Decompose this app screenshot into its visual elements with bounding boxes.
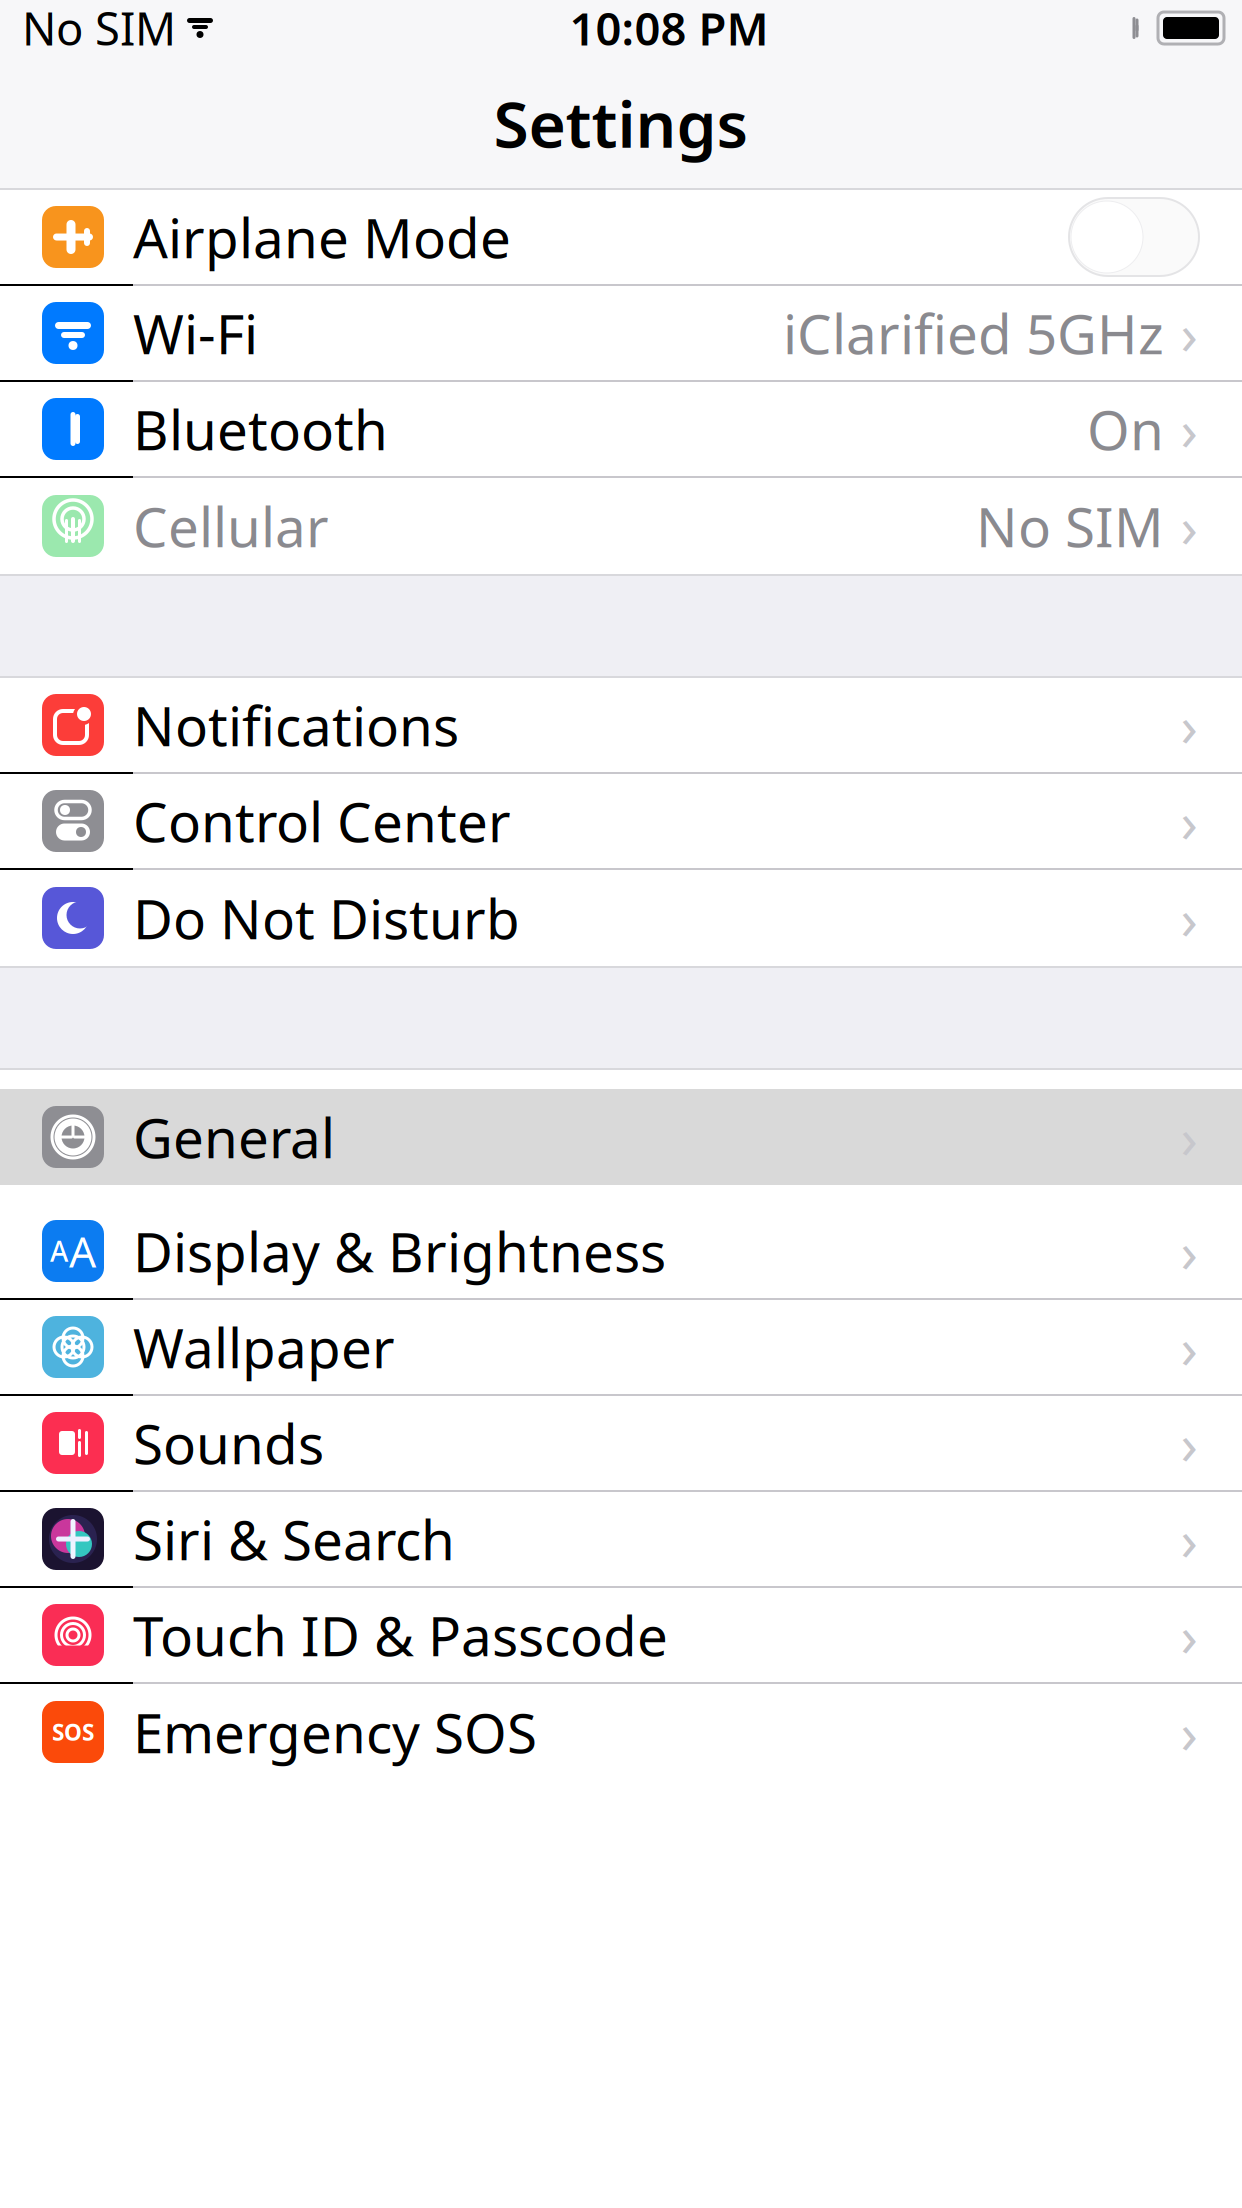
button[interactable]: SOS <box>0 1684 1242 1780</box>
staticText: › <box>1180 1695 1197 1769</box>
staticText: Cellular <box>133 490 329 562</box>
button[interactable]: General <box>0 1089 1242 1185</box>
button[interactable]: Cellular <box>0 478 1242 574</box>
staticText: Do Not Disturb <box>133 882 520 954</box>
staticText: Sounds <box>133 1407 324 1479</box>
button[interactable]: Control Center <box>0 774 1242 870</box>
button[interactable]: Wallpaper <box>0 1300 1242 1396</box>
staticText: A <box>50 1232 68 1270</box>
staticText: On <box>1087 393 1164 465</box>
staticText: Notifications <box>133 689 459 761</box>
button[interactable]: A <box>0 1204 1242 1300</box>
staticText: › <box>1180 881 1197 955</box>
staticText: Airplane Mode <box>133 201 511 273</box>
button[interactable]: Notifications <box>0 678 1242 774</box>
staticText: No SIM <box>22 0 176 58</box>
staticText: No SIM <box>976 490 1164 562</box>
staticText: A <box>69 1223 96 1279</box>
button[interactable]: Airplane Mode <box>0 190 1242 286</box>
button[interactable]: Touch ID & Passcode <box>0 1588 1242 1684</box>
staticText: › <box>1180 1406 1197 1480</box>
staticText: iClarified 5GHz <box>783 297 1164 369</box>
button[interactable]: Sounds <box>0 1396 1242 1492</box>
staticText: › <box>1180 296 1197 370</box>
staticText: Wallpaper <box>133 1311 395 1383</box>
button[interactable]: Do Not Disturb <box>0 870 1242 966</box>
staticText: › <box>1180 1502 1197 1576</box>
staticText: Emergency SOS <box>133 1696 537 1768</box>
staticText: › <box>1180 1598 1197 1672</box>
button[interactable]: Siri & Search <box>0 1492 1242 1588</box>
staticText: Touch ID & Passcode <box>133 1599 668 1671</box>
staticText: Bluetooth <box>133 393 388 465</box>
staticText: › <box>1180 489 1197 563</box>
staticText: › <box>1180 784 1197 858</box>
staticText: General <box>133 1101 335 1173</box>
staticText: › <box>1180 1310 1197 1384</box>
button[interactable]: Wi-Fi <box>0 286 1242 382</box>
staticText: › <box>1180 1100 1197 1174</box>
staticText: Control Center <box>133 785 511 857</box>
button[interactable]: Bluetooth <box>0 382 1242 478</box>
staticText: 10:08 PM <box>569 0 768 58</box>
staticText: SOS <box>52 1717 94 1747</box>
staticText: › <box>1180 1214 1197 1288</box>
staticText: Wi-Fi <box>133 297 258 369</box>
staticText: › <box>1180 392 1197 466</box>
staticText: Display & Brightness <box>133 1215 666 1287</box>
staticText: Siri & Search <box>133 1503 455 1575</box>
staticText: Settings <box>493 80 748 165</box>
staticText: › <box>1180 688 1197 762</box>
